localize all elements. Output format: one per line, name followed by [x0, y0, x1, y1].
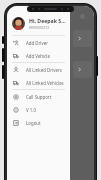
staticText: Logout [26, 120, 41, 126]
button[interactable]: All Linked Vehicles [7, 76, 70, 89]
button[interactable]: Add Vehicle [7, 49, 70, 62]
staticText: V 1.0 [26, 107, 36, 113]
staticText: Call Support [26, 94, 52, 100]
button[interactable]: Add Driver [7, 36, 70, 49]
staticText: All Linked Drivers [26, 67, 62, 73]
other: All Linked Drivers [13, 67, 19, 73]
other: Open details [77, 36, 82, 41]
button[interactable]: Open details [73, 30, 92, 47]
button[interactable]: App version [7, 103, 70, 116]
other: Add Vehicle [13, 53, 19, 59]
button[interactable]: Refresh [80, 14, 85, 19]
other: Call Support [13, 94, 19, 100]
button[interactable]: Call Support [7, 90, 70, 103]
other: Add Driver [13, 40, 19, 46]
other: Logout [13, 120, 19, 126]
other: Open details [77, 67, 82, 72]
button[interactable]: Hi, Deepak Sharma [12, 17, 67, 30]
other: All Linked Vehicles [13, 80, 19, 86]
button[interactable]: Logout [7, 116, 70, 129]
staticText: 8899XXXX72 [29, 25, 50, 30]
staticText: Hi, Deepak Sharma [29, 17, 67, 24]
staticText: Add Vehicle [26, 53, 50, 59]
other: App version [13, 107, 19, 113]
button[interactable]: Open details [73, 61, 92, 78]
button[interactable]: All Linked Drivers [7, 63, 70, 76]
staticText: Add Driver [26, 40, 49, 46]
staticText: All Linked Vehicles [26, 80, 64, 86]
